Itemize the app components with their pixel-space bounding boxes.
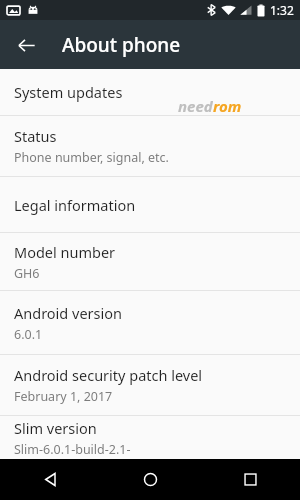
staticText: Phone number, signal, etc. [14, 149, 169, 166]
button[interactable]: Back [0, 459, 100, 500]
staticText: Legal information [14, 195, 136, 215]
staticText: System updates [14, 82, 123, 102]
button[interactable]: Back [6, 25, 46, 65]
button[interactable]: Home [100, 459, 200, 500]
button[interactable]: System updates [0, 69, 300, 115]
button[interactable]: Recent apps [200, 459, 300, 500]
staticText: About phone [62, 32, 181, 58]
staticText: Android version [14, 303, 122, 323]
staticText: Model number [14, 242, 116, 262]
button[interactable]: Model number [0, 233, 300, 290]
staticText: rom [213, 96, 242, 116]
staticText: Slim-6.0.1-build-2.1-UNOFFICIAL-20170511… [14, 441, 286, 458]
button[interactable]: Android version [0, 291, 300, 354]
staticText: Slim version [14, 418, 97, 438]
staticText: February 1, 2017 [14, 388, 113, 405]
button[interactable]: Slim version [0, 416, 300, 459]
staticText: Android security patch level [14, 365, 203, 385]
button[interactable]: Legal information [0, 177, 300, 232]
staticText: GH6 [14, 265, 40, 282]
staticText: 1:32 [270, 2, 294, 18]
staticText: 6.0.1 [14, 326, 43, 343]
staticText: need [178, 96, 213, 116]
button[interactable]: Android security patch level [0, 355, 300, 415]
staticText: Status [14, 126, 57, 146]
button[interactable]: Status [0, 116, 300, 176]
